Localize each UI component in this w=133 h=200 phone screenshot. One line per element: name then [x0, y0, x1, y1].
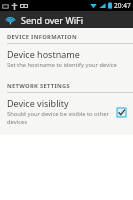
button[interactable]: App icon	[0, 11, 133, 28]
staticText: NETWORK SETTINGS	[7, 82, 71, 90]
staticText: Device visiblity	[7, 97, 69, 109]
staticText: Should your device be visible to other d…	[7, 110, 110, 126]
staticText: DEVICE INFORMATION	[7, 33, 77, 41]
other: App icon	[5, 14, 16, 25]
button[interactable]: Device visibility toggle	[114, 105, 128, 119]
button[interactable]: Device visiblity	[0, 93, 133, 130]
staticText: Device hostname	[7, 48, 80, 60]
button[interactable]: Device hostname	[0, 44, 133, 73]
staticText: 20:47	[114, 1, 131, 10]
staticText: Send over WiFi	[21, 14, 84, 26]
staticText: Set the hostname to identify your device	[7, 61, 117, 69]
